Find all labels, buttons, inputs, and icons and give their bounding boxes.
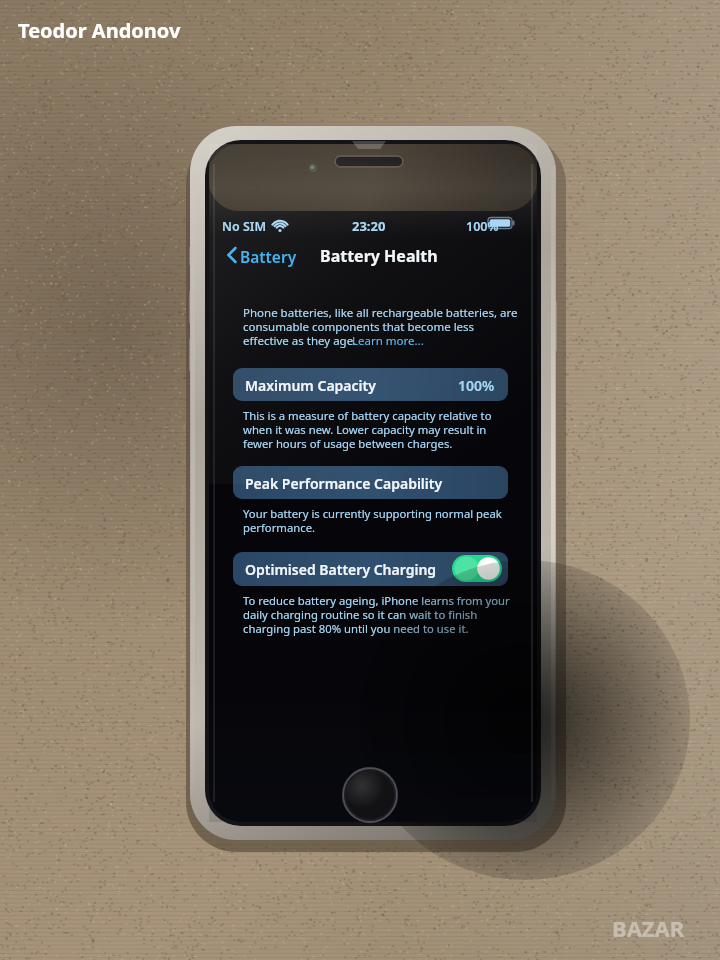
button[interactable]: Peak Performance Capability (233, 466, 508, 499)
button[interactable]: Maximum Capacity, 100% (233, 368, 508, 401)
button[interactable]: Learn more (352, 330, 420, 348)
button[interactable]: Optimised Battery Charging (233, 552, 508, 586)
button[interactable]: Back to Battery (223, 240, 293, 270)
button[interactable]: Toggle Optimised Battery Charging (452, 555, 502, 583)
